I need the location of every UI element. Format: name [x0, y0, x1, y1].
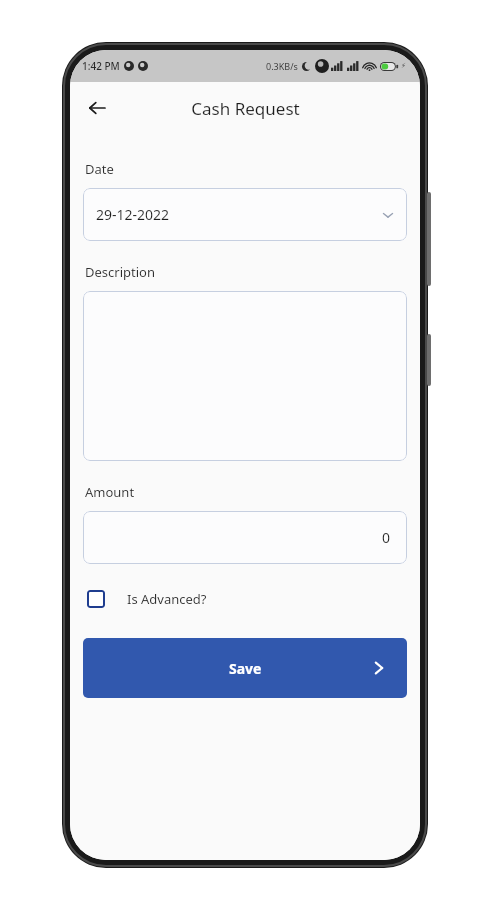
staticText: 29-12-2022 — [96, 205, 170, 224]
button[interactable]: 0 — [83, 511, 407, 564]
button[interactable]: 29-12-2022 — [83, 188, 407, 241]
staticText: Cash Request — [191, 97, 300, 120]
staticText: Date — [85, 160, 114, 178]
staticText: Description — [85, 263, 155, 281]
staticText: 0.3KB/s — [266, 60, 298, 72]
staticText: 0 — [382, 528, 391, 547]
button[interactable]: Is Advanced? — [83, 584, 211, 614]
staticText: Amount — [85, 483, 135, 501]
staticText: 1:42 PM — [82, 59, 120, 73]
button[interactable] — [83, 291, 407, 461]
staticText: Is Advanced? — [127, 590, 207, 608]
button[interactable]: Back — [76, 87, 118, 129]
staticText: Save — [229, 659, 262, 678]
button[interactable]: Save — [83, 638, 407, 698]
staticText: ⚡ — [401, 62, 406, 70]
